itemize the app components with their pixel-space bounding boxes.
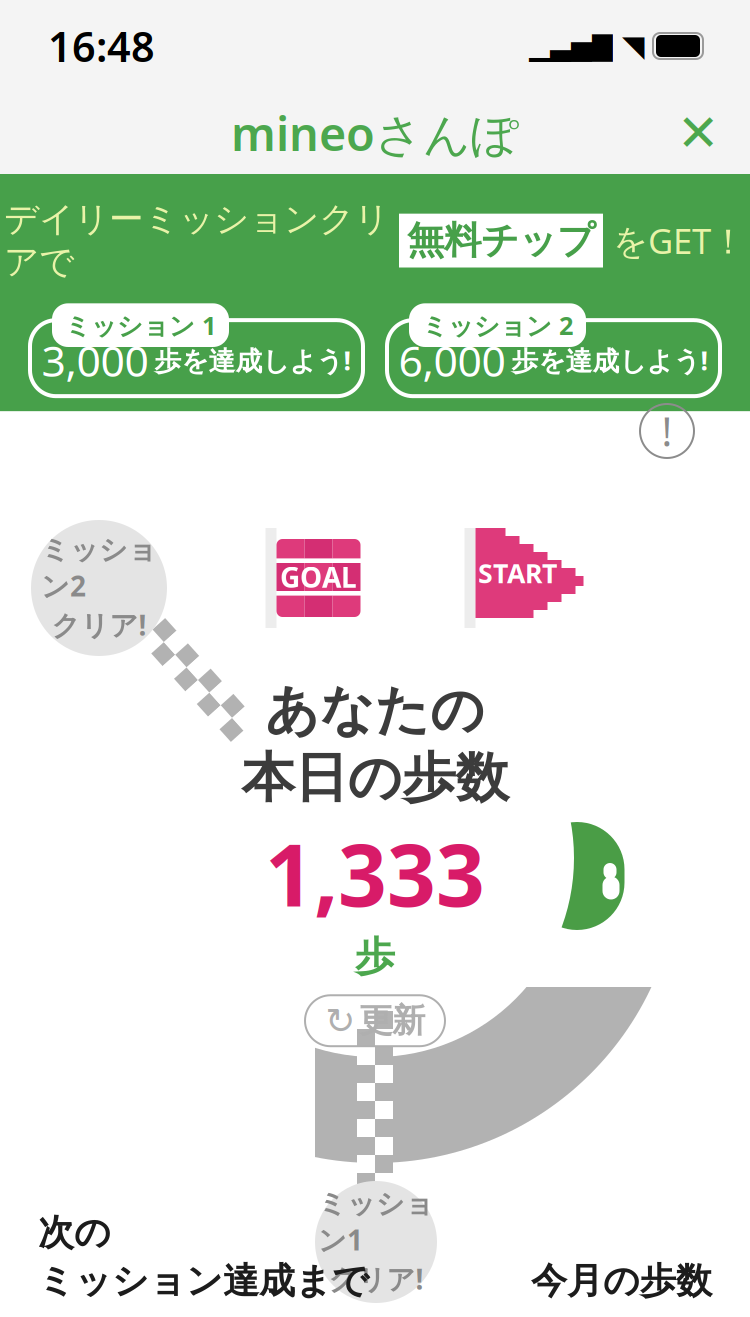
staticText: ミッション達成まで bbox=[38, 1259, 369, 1303]
button[interactable]: 6,000 bbox=[383, 297, 724, 401]
staticText: ミッション2 bbox=[41, 533, 157, 604]
button[interactable]: 注意事項 bbox=[640, 404, 694, 458]
staticText: GOAL bbox=[280, 558, 357, 596]
staticText: 歩を達成しよう! bbox=[511, 342, 708, 378]
staticText: 次の bbox=[38, 1211, 111, 1255]
staticText: クリア! bbox=[328, 1260, 423, 1297]
staticText: 6,000 bbox=[398, 332, 505, 388]
staticText: ◥ bbox=[622, 29, 645, 63]
staticText: ✕ bbox=[677, 104, 719, 162]
staticText: ミッション 2 bbox=[422, 308, 573, 342]
staticText: 本日の歩数 bbox=[241, 745, 508, 811]
button[interactable]: 3,000 bbox=[26, 297, 367, 401]
staticText: ミッション 1 bbox=[65, 308, 216, 342]
button[interactable]: ↻ bbox=[305, 995, 445, 1046]
staticText: デイリーミッションクリアで bbox=[4, 198, 389, 283]
staticText: 1,333 bbox=[265, 817, 485, 930]
staticText: あなたの bbox=[265, 678, 485, 743]
staticText: 更新 bbox=[359, 1000, 425, 1041]
staticText: ! bbox=[661, 404, 672, 457]
staticText: mineoさんぽ bbox=[231, 102, 519, 164]
staticText: 歩を達成しよう! bbox=[154, 342, 351, 378]
button[interactable]: 閉じる bbox=[668, 103, 728, 163]
staticText: ミッション1 bbox=[318, 1187, 434, 1258]
staticText: 無料チップ bbox=[407, 218, 595, 264]
staticText: をGET！ bbox=[613, 218, 746, 264]
staticText: 16:48 bbox=[48, 19, 155, 73]
staticText: ▁▃▅▇ bbox=[529, 31, 613, 61]
staticText: 今月の歩数 bbox=[531, 1259, 712, 1303]
staticText: 歩 bbox=[355, 932, 395, 981]
staticText: クリア! bbox=[51, 606, 146, 643]
staticText: ↻ bbox=[325, 1000, 355, 1041]
staticText: 3,000 bbox=[41, 332, 148, 388]
staticText: START bbox=[478, 555, 557, 591]
